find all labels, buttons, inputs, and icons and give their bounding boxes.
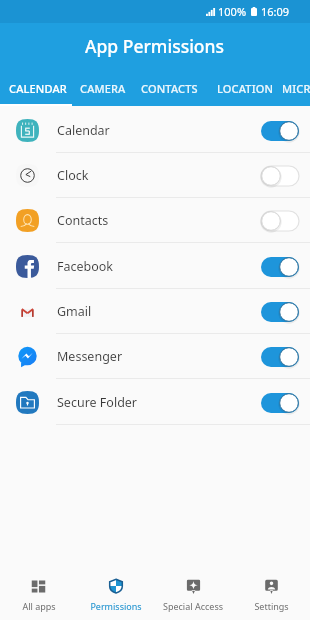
button[interactable]: Facebook: [0, 244, 310, 289]
button[interactable]: Special Access: [154, 560, 232, 620]
staticText: CALENDAR: [9, 81, 67, 96]
button[interactable]: Permissions: [77, 560, 154, 620]
staticText: MICROPHONE: [282, 81, 310, 96]
staticText: Messenger: [57, 348, 123, 365]
button[interactable]: CAMERA: [76, 77, 130, 106]
button[interactable]: Calendar: [0, 108, 310, 153]
other: Permissions: [109, 579, 123, 593]
staticText: Special Access: [163, 600, 223, 612]
button[interactable]: Secure Folder: [0, 380, 310, 425]
staticText: Calendar: [57, 122, 110, 139]
button[interactable]: CALENDAR: [0, 77, 76, 106]
staticText: App Permissions: [85, 34, 225, 58]
button[interactable]: Gmail: [0, 289, 310, 334]
staticText: 16:09: [261, 4, 290, 19]
staticText: CAMERA: [80, 81, 126, 96]
button[interactable]: [261, 393, 299, 413]
other: Special Access: [186, 579, 201, 594]
button[interactable]: MICROPHONE: [282, 77, 310, 106]
button[interactable]: CONTACTS: [130, 77, 208, 106]
button[interactable]: [261, 257, 299, 277]
staticText: Contacts: [57, 212, 109, 229]
staticText: Clock: [57, 167, 89, 184]
button[interactable]: [261, 166, 299, 186]
button[interactable]: LOCATION: [208, 77, 282, 106]
button[interactable]: Messenger: [0, 334, 310, 379]
button[interactable]: Clock: [0, 153, 310, 198]
button[interactable]: [261, 211, 299, 231]
staticText: LOCATION: [217, 81, 274, 96]
staticText: Gmail: [57, 303, 92, 320]
other: Settings: [264, 579, 279, 594]
staticText: CONTACTS: [141, 81, 198, 96]
button[interactable]: Settings: [232, 560, 310, 620]
staticText: Facebook: [57, 258, 114, 275]
staticText: Settings: [254, 600, 289, 612]
button[interactable]: [261, 121, 299, 141]
other: All apps: [31, 579, 46, 594]
button[interactable]: Contacts: [0, 198, 310, 243]
button[interactable]: [261, 347, 299, 367]
button[interactable]: [261, 302, 299, 322]
button[interactable]: All apps: [0, 560, 77, 620]
staticText: 100%: [218, 4, 247, 19]
staticText: All apps: [22, 600, 56, 612]
staticText: Secure Folder: [57, 394, 138, 411]
staticText: Permissions: [90, 600, 142, 612]
